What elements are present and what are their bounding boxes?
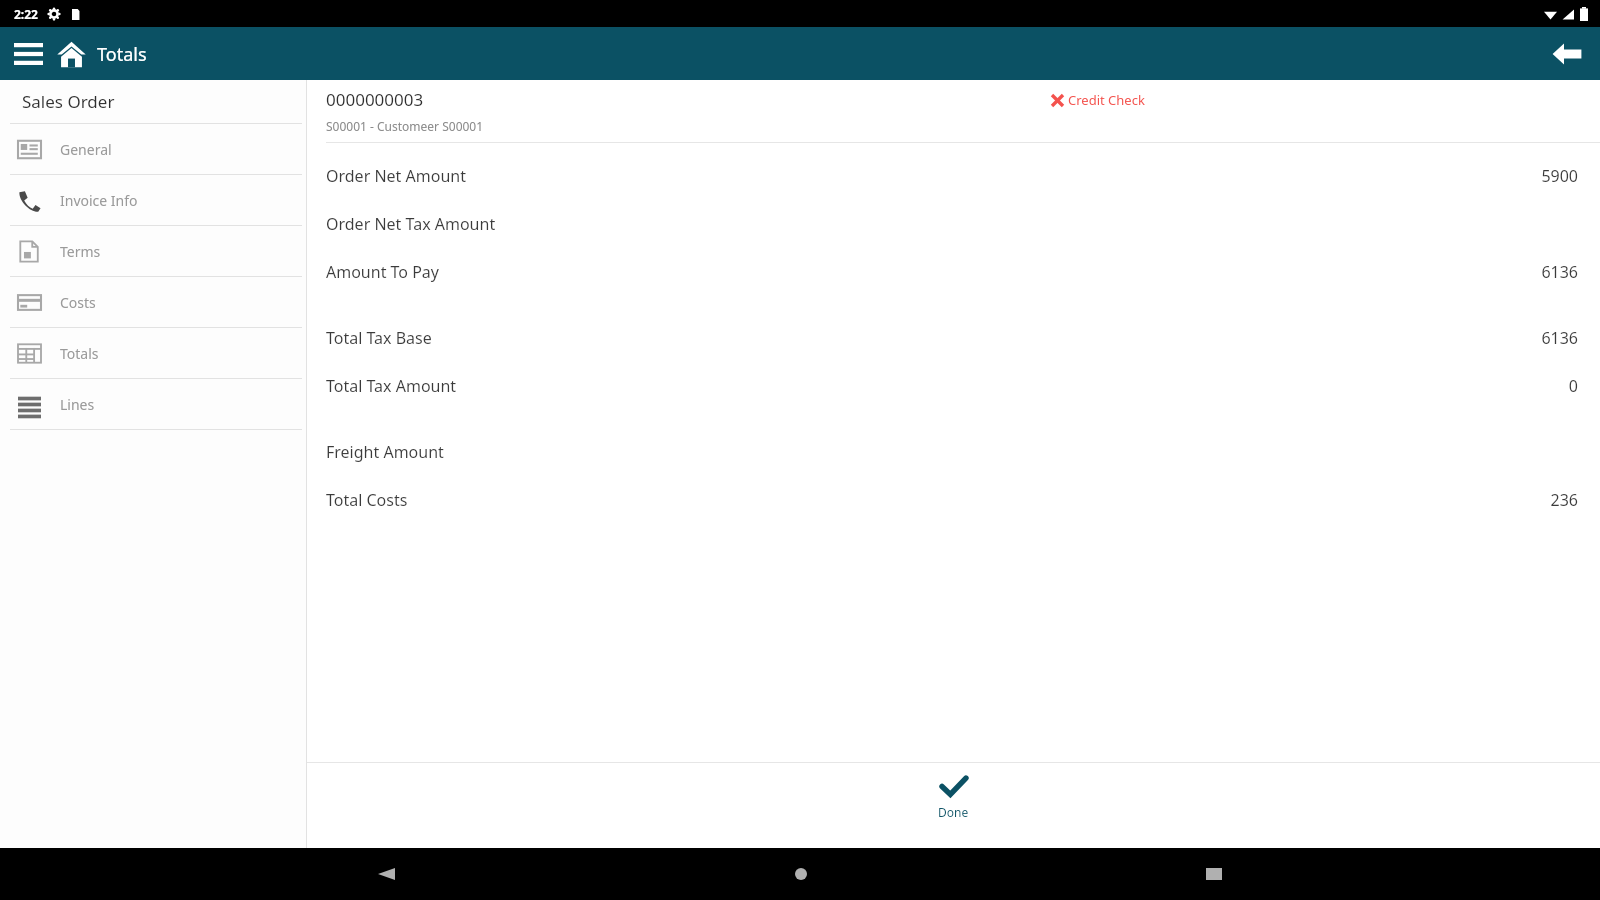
button[interactable]: General: [0, 124, 306, 174]
staticText: Sales Order: [22, 90, 115, 113]
staticText: Total Tax Base: [326, 327, 432, 349]
button[interactable]: Home: [773, 848, 829, 900]
staticText: 2:22: [14, 6, 38, 22]
staticText: 6136: [1541, 327, 1578, 349]
staticText: General: [60, 140, 112, 159]
staticText: 0: [1568, 375, 1578, 397]
button[interactable]: Total Costs: [307, 476, 1600, 524]
button[interactable]: Order Net Tax Amount: [307, 200, 1600, 248]
staticText: Total Costs: [326, 489, 408, 511]
button[interactable]: Invoice Info: [0, 175, 306, 225]
button[interactable]: Amount To Pay: [307, 248, 1600, 296]
button[interactable]: Order Net Amount: [307, 152, 1600, 200]
button[interactable]: Freight Amount: [307, 428, 1600, 476]
button[interactable]: Totals: [0, 328, 306, 378]
staticText: 6136: [1541, 261, 1578, 283]
staticText: S00001 - Customeer S00001: [326, 118, 484, 134]
staticText: 5900: [1541, 165, 1578, 187]
staticText: 236: [1550, 489, 1578, 511]
staticText: Invoice Info: [60, 191, 138, 210]
staticText: Costs: [60, 293, 96, 312]
staticText: Lines: [60, 395, 95, 414]
staticText: Order Net Tax Amount: [326, 213, 496, 235]
staticText: 0000000003: [326, 88, 424, 111]
staticText: Freight Amount: [326, 441, 444, 463]
button[interactable]: Back: [1534, 29, 1600, 79]
staticText: Credit Check: [1068, 91, 1145, 109]
button[interactable]: Back: [358, 848, 415, 900]
button[interactable]: Total Tax Base: [307, 314, 1600, 362]
staticText: Order Net Amount: [326, 165, 466, 187]
button[interactable]: Costs: [0, 277, 306, 327]
button[interactable]: Recents: [1186, 848, 1242, 900]
button[interactable]: Total Tax Amount: [307, 362, 1600, 410]
button[interactable]: Totals: [57, 40, 161, 69]
button[interactable]: Done: [914, 763, 993, 828]
staticText: Amount To Pay: [326, 261, 440, 283]
button[interactable]: Menu: [0, 33, 57, 75]
staticText: Total Tax Amount: [326, 375, 457, 397]
button[interactable]: Lines: [0, 379, 306, 429]
staticText: Done: [938, 804, 969, 820]
staticText: Terms: [60, 242, 101, 261]
button[interactable]: Credit Check: [1052, 91, 1145, 109]
staticText: Totals: [97, 42, 147, 67]
staticText: Totals: [60, 344, 99, 363]
button[interactable]: Terms: [0, 226, 306, 276]
